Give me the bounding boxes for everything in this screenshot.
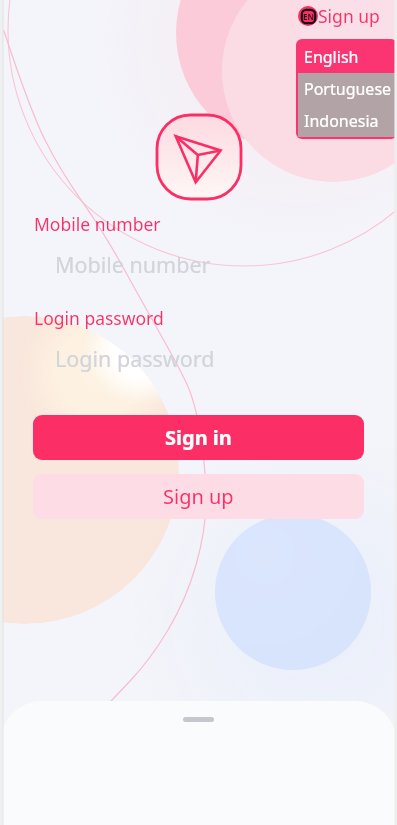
staticText: Indonesia: [304, 110, 379, 132]
staticText: Mobile number: [55, 250, 211, 279]
staticText: Login password: [34, 306, 164, 330]
staticText: Sign in: [165, 424, 232, 451]
button[interactable]: Sign in: [33, 415, 364, 460]
button[interactable]: English: [298, 41, 395, 73]
button[interactable]: Portuguese: [298, 73, 395, 105]
staticText: Portuguese: [304, 78, 392, 100]
staticText: Sign up: [318, 4, 380, 28]
button[interactable]: Indonesia: [298, 105, 395, 137]
button[interactable]: Sign up: [33, 474, 364, 519]
staticText: English: [304, 46, 359, 68]
staticText: Mobile number: [34, 212, 161, 236]
button[interactable]: Language: English: [298, 4, 380, 28]
staticText: Sign up: [163, 483, 234, 510]
staticText: Login password: [55, 344, 215, 373]
staticText: EN: [303, 11, 314, 22]
other: Language: English: [298, 6, 318, 26]
